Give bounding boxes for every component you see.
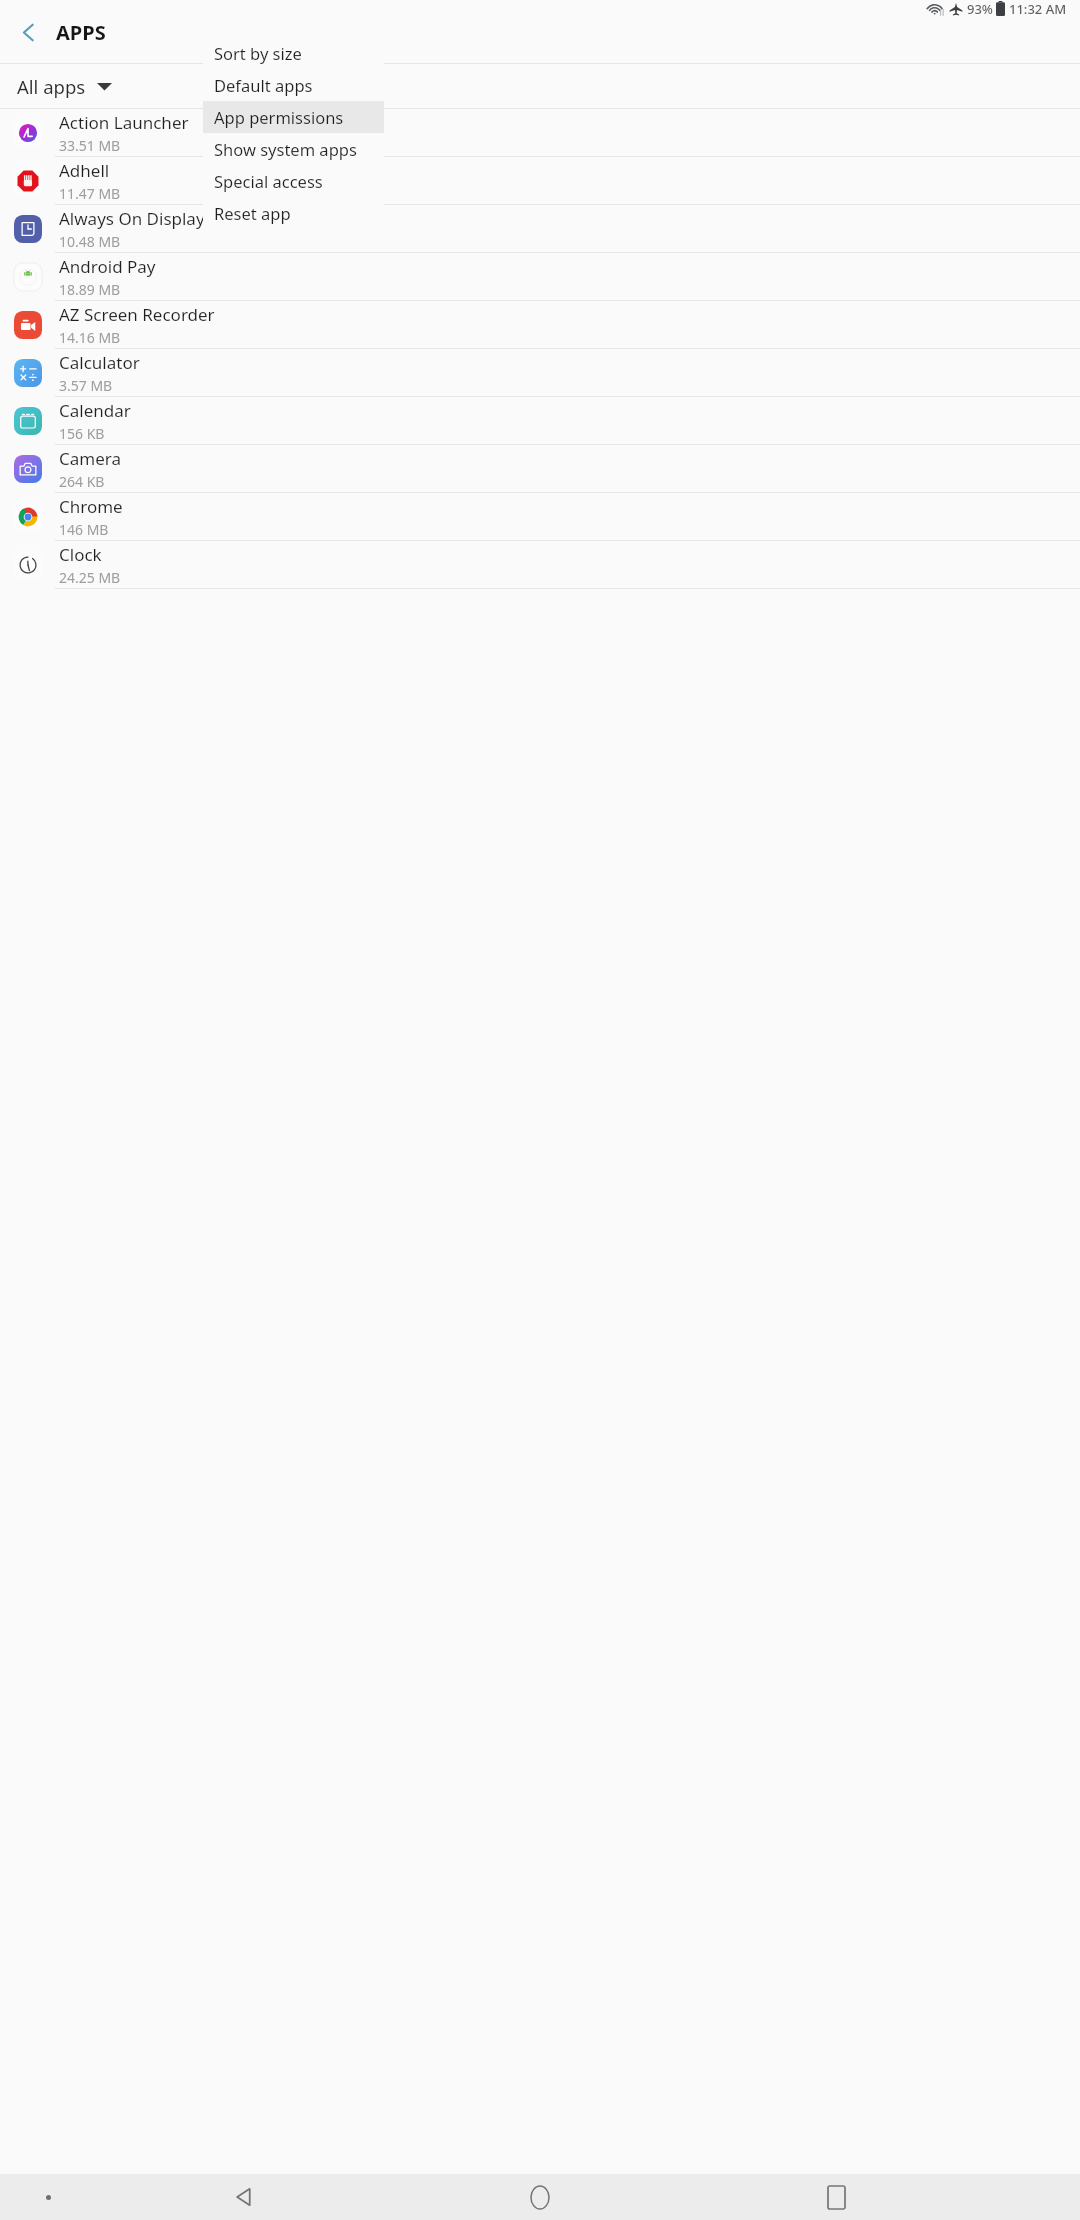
staticText: Adhell (59, 159, 110, 182)
button[interactable]: Back (96, 2174, 392, 2220)
staticText: 11.47 MB (59, 184, 121, 203)
staticText: 146 MB (59, 520, 109, 539)
button[interactable]: Android Pay (0, 253, 1080, 301)
staticText: Default apps (214, 74, 313, 96)
staticText: All apps (17, 74, 86, 99)
staticText: 18.89 MB (59, 280, 121, 299)
staticText: Calculator (59, 351, 140, 374)
button[interactable]: Special access (203, 165, 384, 197)
staticText: Show system apps (214, 138, 357, 160)
staticText: Android Pay (59, 255, 156, 278)
button[interactable]: Default apps (203, 69, 384, 101)
staticText: Reset app preferences (214, 202, 384, 224)
staticText: APPS (56, 19, 106, 46)
staticText: Always On Display (59, 207, 205, 230)
button[interactable]: Back (0, 17, 56, 47)
button[interactable]: Calendar (0, 397, 1080, 445)
staticText: Action Launcher (59, 111, 189, 134)
staticText: 93% (967, 0, 993, 17)
button[interactable]: Show system apps (203, 133, 384, 165)
staticText: 24.25 MB (59, 568, 121, 587)
staticText: Clock (59, 543, 102, 566)
staticText: Special access (214, 170, 323, 192)
staticText: 10.48 MB (59, 232, 121, 251)
button[interactable]: Adhell (0, 157, 1080, 205)
staticText: 11:32 AM (1009, 0, 1067, 17)
button[interactable]: All apps (0, 64, 1080, 108)
staticText: AZ Screen Recorder (59, 303, 215, 326)
button[interactable]: Clock (0, 541, 1080, 589)
staticText: 14.16 MB (59, 328, 121, 347)
button[interactable]: Always On Display (0, 205, 1080, 253)
button[interactable]: Home (392, 2174, 688, 2220)
button[interactable]: Recents (688, 2174, 984, 2220)
button[interactable]: Chrome (0, 493, 1080, 541)
button[interactable]: App permissions (203, 101, 384, 133)
button[interactable]: AZ Screen Recorder (0, 301, 1080, 349)
button[interactable]: Reset app preferences (203, 197, 384, 229)
button[interactable]: Calculator (0, 349, 1080, 397)
staticText: App permissions (214, 106, 344, 128)
button[interactable]: Sort by size (203, 37, 384, 69)
staticText: Camera (59, 447, 121, 470)
button[interactable]: Action Launcher (0, 109, 1080, 157)
staticText: 156 KB (59, 424, 105, 443)
staticText: 264 KB (59, 472, 105, 491)
staticText: 3.57 MB (59, 376, 113, 395)
staticText: Sort by size (214, 42, 302, 64)
staticText: Calendar (59, 399, 131, 422)
staticText: Chrome (59, 495, 123, 518)
staticText: 33.51 MB (59, 136, 121, 155)
button[interactable]: Camera (0, 445, 1080, 493)
